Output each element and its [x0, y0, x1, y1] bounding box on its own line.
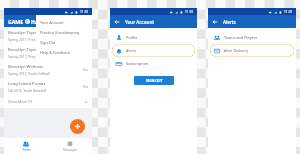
- staticText: Subscription: [126, 61, 149, 66]
- button[interactable]: Teams: [4, 138, 48, 154]
- button[interactable]: Subscription: [112, 57, 195, 70]
- button[interactable]: Practice Scorekeeping: [36, 27, 92, 37]
- staticText: Alert Delivery: [224, 48, 248, 53]
- button[interactable]: Long Island Pumas: [4, 78, 92, 95]
- staticText: Help & Feedback: [40, 50, 70, 55]
- staticText: Fall 2016, Youth Baseball: [8, 88, 47, 92]
- staticText: 11:10: [80, 10, 89, 14]
- button[interactable]: SIGN OUT: [134, 76, 174, 85]
- button[interactable]: Brooklyn Tigers JV: [4, 44, 92, 61]
- staticText: Brooklyn Tigers V: [8, 30, 43, 36]
- button[interactable]: Sign Out: [36, 37, 92, 47]
- staticText: Your Account: [40, 20, 64, 25]
- button[interactable]: Your Account: [36, 17, 92, 27]
- button[interactable]: Add: [70, 119, 85, 134]
- staticText: Show More (1): [8, 99, 33, 104]
- staticText: Brooklyn Wildcats: [8, 64, 44, 70]
- staticText: Teams and Players: [224, 35, 258, 40]
- staticText: Long Island Pumas: [8, 81, 46, 87]
- staticText: Teams: [22, 148, 31, 152]
- button[interactable]: Show More (1): [4, 95, 92, 108]
- button[interactable]: Alert Delivery: [210, 44, 294, 57]
- staticText: Your Account: [125, 19, 155, 25]
- staticText: Practice Scorekeeping: [40, 30, 80, 35]
- staticText: Spring 2017, Youth Softball: [8, 71, 50, 75]
- button[interactable]: Alerts: [112, 44, 195, 57]
- staticText: Profile: [126, 35, 138, 40]
- button[interactable]: Help & Feedback: [36, 47, 92, 57]
- staticText: SIGN OUT: [146, 78, 163, 83]
- staticText: GAME: [8, 18, 24, 25]
- staticText: Messages: [63, 148, 77, 152]
- button[interactable]: Messages: [48, 138, 92, 154]
- button[interactable]: GAME: [4, 15, 92, 27]
- staticText: Alerts: [126, 48, 137, 53]
- button[interactable]: Teams and Players: [210, 31, 294, 44]
- button[interactable]: Brooklyn Tigers V: [4, 27, 92, 44]
- staticText: Alerts: [223, 19, 236, 25]
- staticText: 11:10: [185, 10, 194, 14]
- staticText: Spring 2017, Prep Ba: [8, 54, 41, 58]
- button[interactable]: Brooklyn Wildcats: [4, 61, 92, 78]
- staticText: 11:10: [284, 10, 293, 14]
- button[interactable]: Profile: [112, 31, 195, 44]
- staticText: C: [26, 19, 29, 24]
- staticText: Fee: [83, 85, 88, 89]
- staticText: Spring 2017, Prep Ba: [8, 37, 41, 41]
- staticText: Sign Out: [40, 40, 56, 45]
- staticText: Fee: [83, 68, 88, 72]
- staticText: HANGER: [31, 18, 53, 25]
- button[interactable]: Back: [110, 15, 123, 28]
- staticText: Brooklyn Tigers JV: [8, 47, 44, 53]
- button[interactable]: Back: [208, 15, 221, 28]
